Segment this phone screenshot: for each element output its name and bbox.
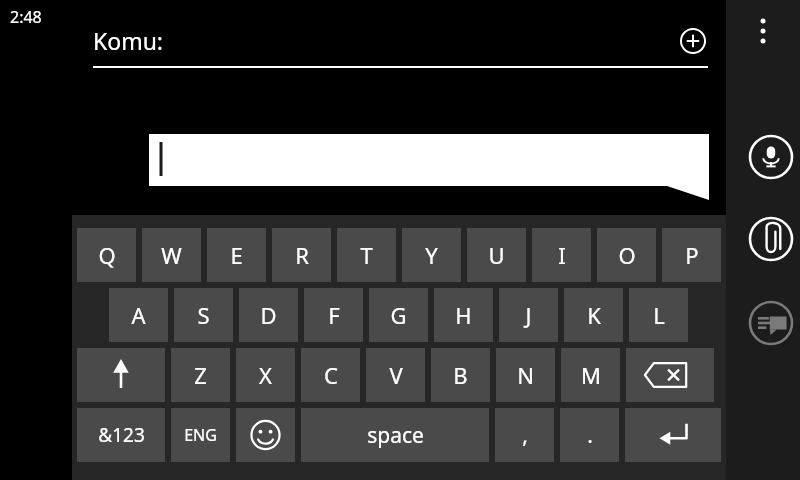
staticText: &123 (98, 422, 145, 448)
button[interactable]: D (239, 288, 298, 342)
button[interactable]: T (337, 228, 396, 282)
staticText: , (522, 421, 528, 450)
button[interactable]: Add recipient (675, 23, 711, 59)
button[interactable]: Backspace (626, 348, 714, 402)
staticText: J (525, 300, 532, 330)
button[interactable]: N (496, 348, 555, 402)
staticText: B (453, 360, 468, 390)
button[interactable]: H (434, 288, 493, 342)
button[interactable]: . (560, 408, 619, 462)
button[interactable]: More options (742, 10, 784, 52)
staticText: P (685, 240, 699, 270)
staticText: Y (425, 240, 438, 270)
button[interactable]: Voice input (748, 134, 794, 180)
button[interactable]: C (301, 348, 360, 402)
staticText: V (389, 360, 403, 390)
staticText: H (455, 300, 472, 330)
button[interactable]: E (207, 228, 266, 282)
staticText: C (324, 360, 338, 390)
button[interactable]: I (532, 228, 591, 282)
button[interactable]: &123 (77, 408, 165, 462)
staticText: M (581, 360, 601, 390)
button[interactable]: F (304, 288, 363, 342)
button[interactable]: Q (77, 228, 136, 282)
staticText: ENG (184, 424, 217, 446)
button[interactable]: P (662, 228, 721, 282)
staticText: Komu: (93, 25, 164, 56)
button[interactable]: Shift (77, 348, 165, 402)
staticText: 2:48 (10, 6, 42, 28)
button[interactable]: ENG (171, 408, 230, 462)
staticText: F (328, 300, 340, 330)
button[interactable]: U (467, 228, 526, 282)
staticText: Q (98, 240, 116, 270)
staticText: S (197, 300, 210, 330)
button[interactable]: W (142, 228, 201, 282)
button[interactable]: Y (402, 228, 461, 282)
button[interactable]: B (431, 348, 490, 402)
staticText: O (618, 240, 636, 270)
staticText: E (230, 240, 243, 270)
button[interactable]: space (301, 408, 489, 462)
staticText: X (259, 360, 272, 390)
staticText: D (260, 300, 277, 330)
button[interactable]: Komu: (93, 18, 708, 68)
button[interactable]: , (495, 408, 554, 462)
button[interactable]: J (499, 288, 558, 342)
staticText: W (161, 240, 182, 270)
button[interactable]: A (109, 288, 168, 342)
button[interactable]: Send (748, 300, 794, 346)
staticText: T (360, 240, 373, 270)
button[interactable]: Z (171, 348, 230, 402)
staticText: G (390, 300, 407, 330)
button[interactable]: S (174, 288, 233, 342)
staticText: U (488, 240, 505, 270)
button[interactable]: G (369, 288, 428, 342)
staticText: . (587, 421, 593, 450)
button[interactable]: Emoji (236, 408, 295, 462)
button[interactable]: Attach (748, 216, 794, 262)
staticText: Z (194, 360, 207, 390)
staticText: K (587, 300, 601, 330)
staticText: L (653, 300, 665, 330)
staticText: R (295, 240, 309, 270)
button[interactable]: R (272, 228, 331, 282)
staticText: space (367, 421, 424, 450)
button[interactable]: L (629, 288, 688, 342)
button[interactable]: V (366, 348, 425, 402)
button[interactable]: M (561, 348, 620, 402)
button[interactable]: K (564, 288, 623, 342)
button[interactable]: X (236, 348, 295, 402)
staticText: I (558, 240, 566, 270)
button[interactable]: Enter (625, 408, 721, 462)
staticText: A (131, 300, 146, 330)
button[interactable]: O (597, 228, 656, 282)
staticText: N (517, 360, 534, 390)
